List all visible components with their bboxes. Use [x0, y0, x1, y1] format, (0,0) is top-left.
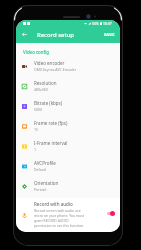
staticText: OMX.Exynos.AVC.Encoder	[34, 67, 77, 72]
button[interactable]: BASIC	[104, 32, 120, 37]
staticText: Record with audio	[34, 201, 73, 207]
staticText: Frame rate (fps)	[34, 120, 68, 126]
staticText: Portrait	[34, 187, 47, 192]
staticText: Resolution	[34, 80, 57, 86]
staticText: 5000	[34, 107, 43, 112]
staticText: Bitrate (kbps)	[34, 100, 63, 106]
button[interactable]: Frame rate (fps)	[16, 116, 120, 136]
staticText: Video config	[23, 49, 50, 55]
staticText: Default	[34, 167, 47, 172]
staticText: 50%	[92, 21, 99, 26]
staticText: 15	[34, 127, 39, 132]
button[interactable]: Back	[18, 28, 31, 41]
button[interactable]: Resolution	[16, 76, 120, 96]
staticText: 1	[34, 147, 37, 152]
staticText: 10:37	[103, 21, 112, 26]
staticText: Record setup	[37, 31, 75, 39]
staticText: AVCProfile	[34, 160, 56, 166]
staticText: Video encoder	[34, 60, 65, 66]
staticText: Record screen with audio use micro on yo…	[34, 208, 86, 228]
button[interactable]: Record with audio toggle	[106, 210, 116, 216]
staticText: Orientation	[34, 180, 59, 186]
button[interactable]: Video encoder	[16, 56, 120, 76]
button[interactable]: AVCProfile	[16, 156, 120, 176]
button[interactable]: I-Frame interval	[16, 136, 120, 156]
staticText: 480x360	[34, 87, 48, 92]
button[interactable]: Orientation	[16, 176, 120, 196]
staticText: I-Frame interval	[34, 140, 68, 146]
button[interactable]: Record with audio	[16, 198, 120, 232]
staticText: BASIC	[104, 32, 116, 37]
button[interactable]: Bitrate (kbps)	[16, 96, 120, 116]
